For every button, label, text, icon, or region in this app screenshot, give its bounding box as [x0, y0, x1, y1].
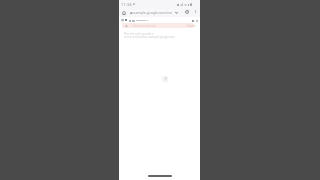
- staticText: 11:34: [121, 2, 132, 8]
- button[interactable]: Home: [122, 11, 126, 15]
- staticText: This site can't provide a: [124, 32, 154, 36]
- staticText: Details: [187, 24, 196, 28]
- button[interactable]: Expand address bar: [175, 11, 178, 14]
- staticText: example.google.com/sea: [132, 10, 173, 15]
- button[interactable]: Your connection is: [122, 23, 193, 28]
- button[interactable]: More options: [194, 10, 197, 13]
- button[interactable]: example.google.com/sea: [128, 10, 177, 15]
- button[interactable]: Reload: [185, 10, 189, 14]
- staticText: secure connection. example.google.com: [124, 35, 175, 39]
- staticText: Your connection is: [133, 24, 157, 28]
